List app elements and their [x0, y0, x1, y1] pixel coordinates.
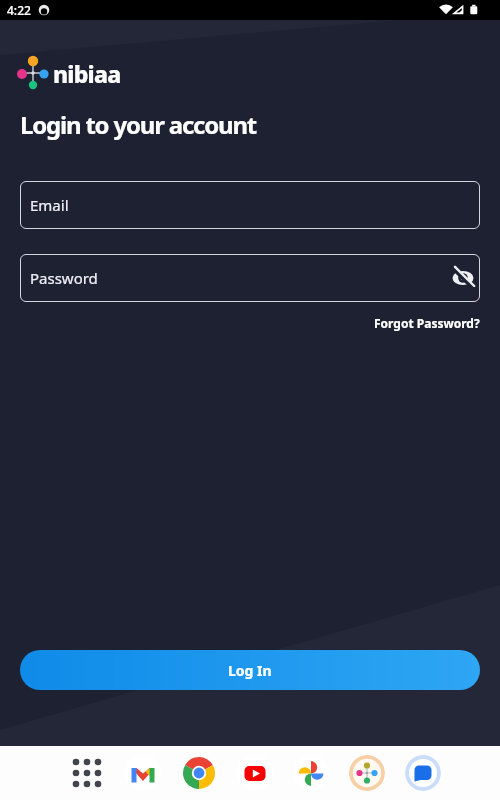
- button[interactable]: Forgot Password?: [374, 315, 480, 331]
- button[interactable]: [293, 755, 329, 791]
- button[interactable]: Log In: [20, 650, 480, 690]
- button[interactable]: [349, 755, 385, 791]
- staticText: Email: [30, 195, 69, 215]
- button[interactable]: [237, 755, 273, 791]
- staticText: nibiaa: [53, 58, 121, 89]
- staticText: Login to your account: [20, 108, 257, 141]
- staticText: 4:22: [7, 2, 31, 18]
- button[interactable]: Password: [20, 254, 480, 302]
- button[interactable]: [405, 755, 441, 791]
- button[interactable]: [181, 755, 217, 791]
- staticText: Log In: [228, 661, 272, 680]
- button[interactable]: [449, 264, 477, 292]
- button[interactable]: [69, 755, 105, 791]
- button[interactable]: [125, 755, 161, 791]
- button[interactable]: Email: [20, 181, 480, 229]
- staticText: Password: [30, 268, 98, 288]
